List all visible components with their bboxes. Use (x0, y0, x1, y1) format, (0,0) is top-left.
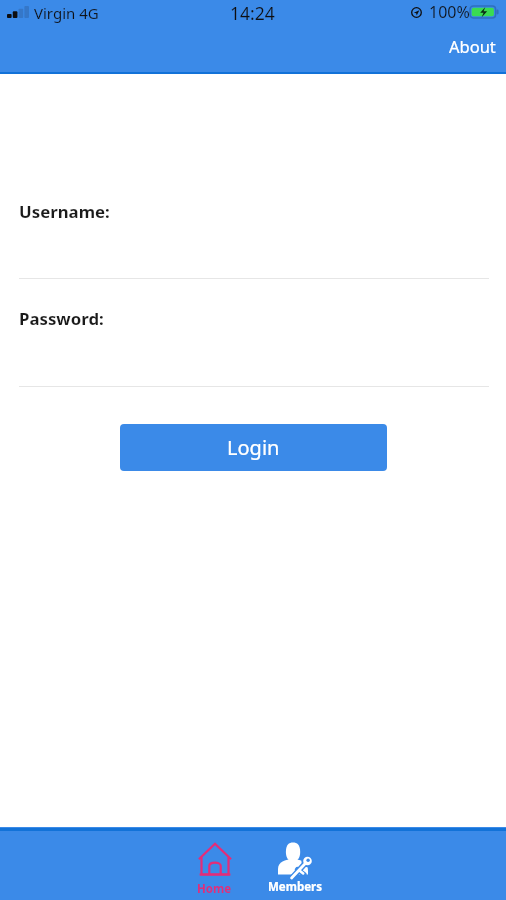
staticText: Home (197, 881, 232, 897)
button[interactable]: Members (255, 834, 335, 898)
button[interactable]: Password input (19, 338, 489, 387)
staticText: Password: (19, 307, 104, 330)
staticText: Username: (19, 200, 110, 223)
staticText: 100% (429, 1, 470, 23)
other: Members (278, 841, 312, 875)
staticText: About (449, 35, 496, 57)
staticText: 14:24 (230, 1, 275, 25)
staticText: Login (227, 434, 280, 461)
staticText: Virgin 4G (34, 3, 99, 23)
other: Home (198, 842, 232, 876)
button[interactable]: About (441, 31, 504, 61)
button[interactable]: Login (120, 424, 387, 471)
button[interactable]: Home (174, 834, 254, 898)
staticText: Members (268, 879, 322, 895)
button[interactable]: Username input (19, 230, 489, 279)
